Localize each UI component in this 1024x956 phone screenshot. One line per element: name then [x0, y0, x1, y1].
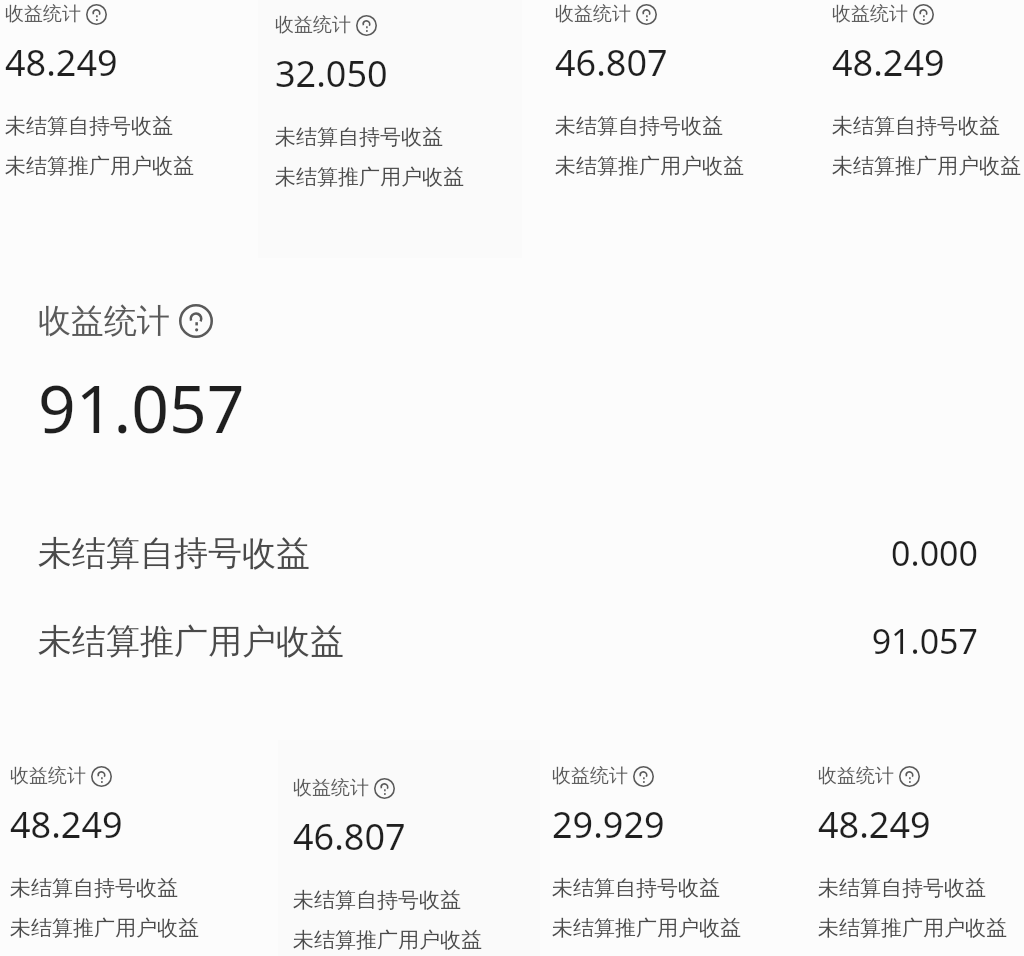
staticText: 收益统计	[293, 776, 369, 800]
staticText: 未结算自持号收益	[818, 875, 986, 901]
button[interactable]: Help	[86, 4, 107, 25]
button[interactable]: 收益统计	[806, 740, 1024, 956]
staticText: 未结算自持号收益	[552, 875, 720, 901]
staticText: 收益统计	[832, 2, 908, 26]
staticText: 48.249	[5, 38, 118, 87]
button[interactable]: Help	[899, 766, 920, 787]
staticText: 收益统计	[818, 764, 894, 788]
staticText: 未结算推广用户收益	[818, 915, 1007, 941]
staticText: 46.807	[293, 812, 406, 861]
button[interactable]: Help	[633, 766, 654, 787]
button[interactable]: 收益统计	[790, 0, 1024, 258]
button[interactable]: 收益统计	[258, 0, 522, 258]
button[interactable]: Help	[636, 4, 657, 25]
button[interactable]: 收益统计	[0, 0, 258, 258]
staticText: 32.050	[275, 49, 388, 98]
staticText: 29.929	[552, 800, 665, 849]
staticText: 未结算推广用户收益	[552, 915, 741, 941]
staticText: 91.057	[344, 618, 978, 664]
staticText: 0.000	[318, 530, 978, 576]
button[interactable]: 收益统计	[0, 258, 1024, 740]
staticText: 收益统计	[5, 2, 81, 26]
staticText: 46.807	[555, 38, 668, 87]
button[interactable]: Help	[374, 778, 395, 799]
staticText: 未结算自持号收益	[38, 532, 310, 575]
button[interactable]: Help	[356, 15, 377, 36]
button[interactable]: Help	[913, 4, 934, 25]
button[interactable]: Help	[91, 766, 112, 787]
staticText: 48.249	[10, 800, 123, 849]
staticText: 收益统计	[275, 13, 351, 37]
staticText: 未结算自持号收益	[832, 113, 1000, 139]
staticText: 未结算推广用户收益	[5, 153, 194, 179]
button[interactable]: 未结算自持号收益	[0, 530, 1024, 576]
staticText: 未结算推广用户收益	[293, 927, 482, 953]
staticText: 未结算推广用户收益	[10, 915, 199, 941]
staticText: 未结算自持号收益	[293, 887, 461, 913]
staticText: 收益统计	[38, 300, 170, 342]
button[interactable]: 收益统计	[0, 740, 278, 956]
staticText: 未结算推广用户收益	[555, 153, 744, 179]
button[interactable]: 收益统计	[522, 0, 790, 258]
staticText: 收益统计	[552, 764, 628, 788]
staticText: 未结算推广用户收益	[38, 620, 344, 663]
button[interactable]: 收益统计	[540, 740, 806, 956]
staticText: 91.057	[38, 362, 245, 452]
staticText: 48.249	[832, 38, 945, 87]
staticText: 收益统计	[10, 764, 86, 788]
staticText: 48.249	[818, 800, 931, 849]
staticText: 未结算自持号收益	[5, 113, 173, 139]
button[interactable]: 收益统计	[278, 740, 540, 956]
button[interactable]: Help	[179, 304, 213, 338]
staticText: 收益统计	[555, 2, 631, 26]
staticText: 未结算推广用户收益	[275, 164, 464, 190]
staticText: 未结算自持号收益	[555, 113, 723, 139]
staticText: 未结算自持号收益	[10, 875, 178, 901]
button[interactable]: 未结算推广用户收益	[0, 618, 1024, 664]
staticText: 未结算推广用户收益	[832, 153, 1021, 179]
staticText: 未结算自持号收益	[275, 124, 443, 150]
